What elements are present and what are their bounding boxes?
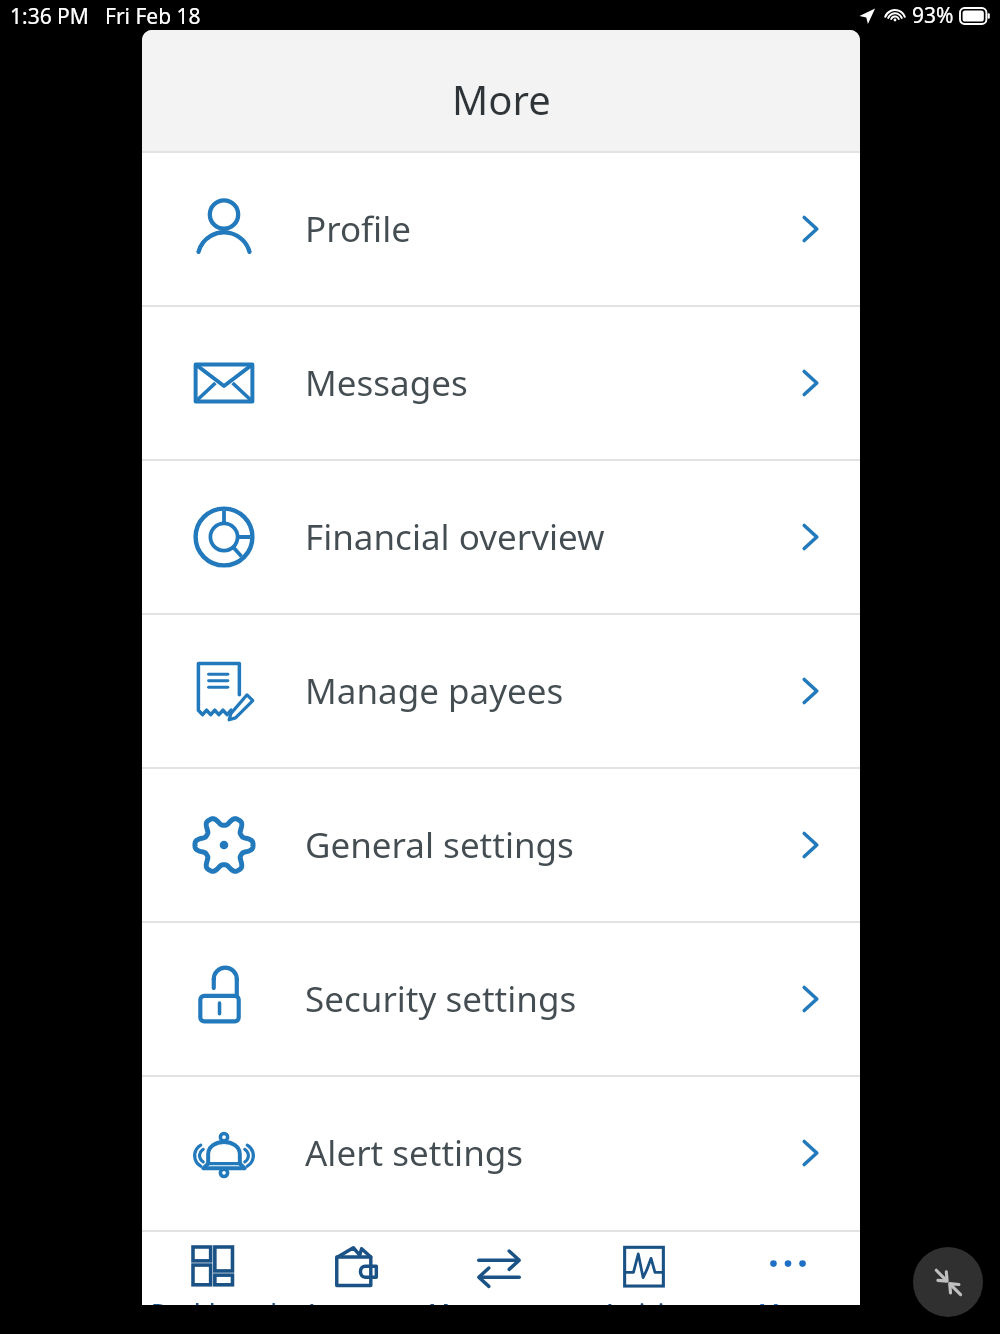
staticText: Financial overview: [305, 513, 605, 561]
staticText: Move money: [428, 1295, 572, 1305]
staticText: More: [758, 1295, 819, 1305]
button[interactable]: Move money: [428, 1232, 572, 1305]
button[interactable]: Messages: [142, 307, 860, 459]
button[interactable]: Activity: [572, 1232, 716, 1305]
staticText: Security settings: [305, 975, 577, 1023]
staticText: 1:36 PM: [10, 2, 89, 31]
staticText: General settings: [305, 821, 574, 869]
staticText: Manage payees: [305, 667, 564, 715]
staticText: More: [452, 72, 551, 126]
button[interactable]: Dashboard: [142, 1232, 285, 1305]
button[interactable]: Alert settings: [142, 1077, 860, 1229]
staticText: Fri Feb 18: [105, 2, 201, 31]
button[interactable]: Security settings: [142, 923, 860, 1075]
staticText: Dashboard: [151, 1295, 277, 1305]
button[interactable]: Financial overview: [142, 461, 860, 613]
staticText: Accounts: [304, 1295, 409, 1305]
button[interactable]: Profile: [142, 153, 860, 305]
button[interactable]: General settings: [142, 769, 860, 921]
staticText: Alert settings: [305, 1129, 524, 1177]
button[interactable]: More: [716, 1232, 860, 1305]
staticText: Profile: [305, 205, 411, 253]
button[interactable]: Accounts: [285, 1232, 428, 1305]
button[interactable]: Manage payees: [142, 615, 860, 767]
staticText: Activity: [602, 1295, 687, 1305]
staticText: Messages: [305, 359, 468, 407]
staticText: 93%: [912, 1, 954, 30]
button[interactable]: Collapse: [913, 1247, 983, 1317]
